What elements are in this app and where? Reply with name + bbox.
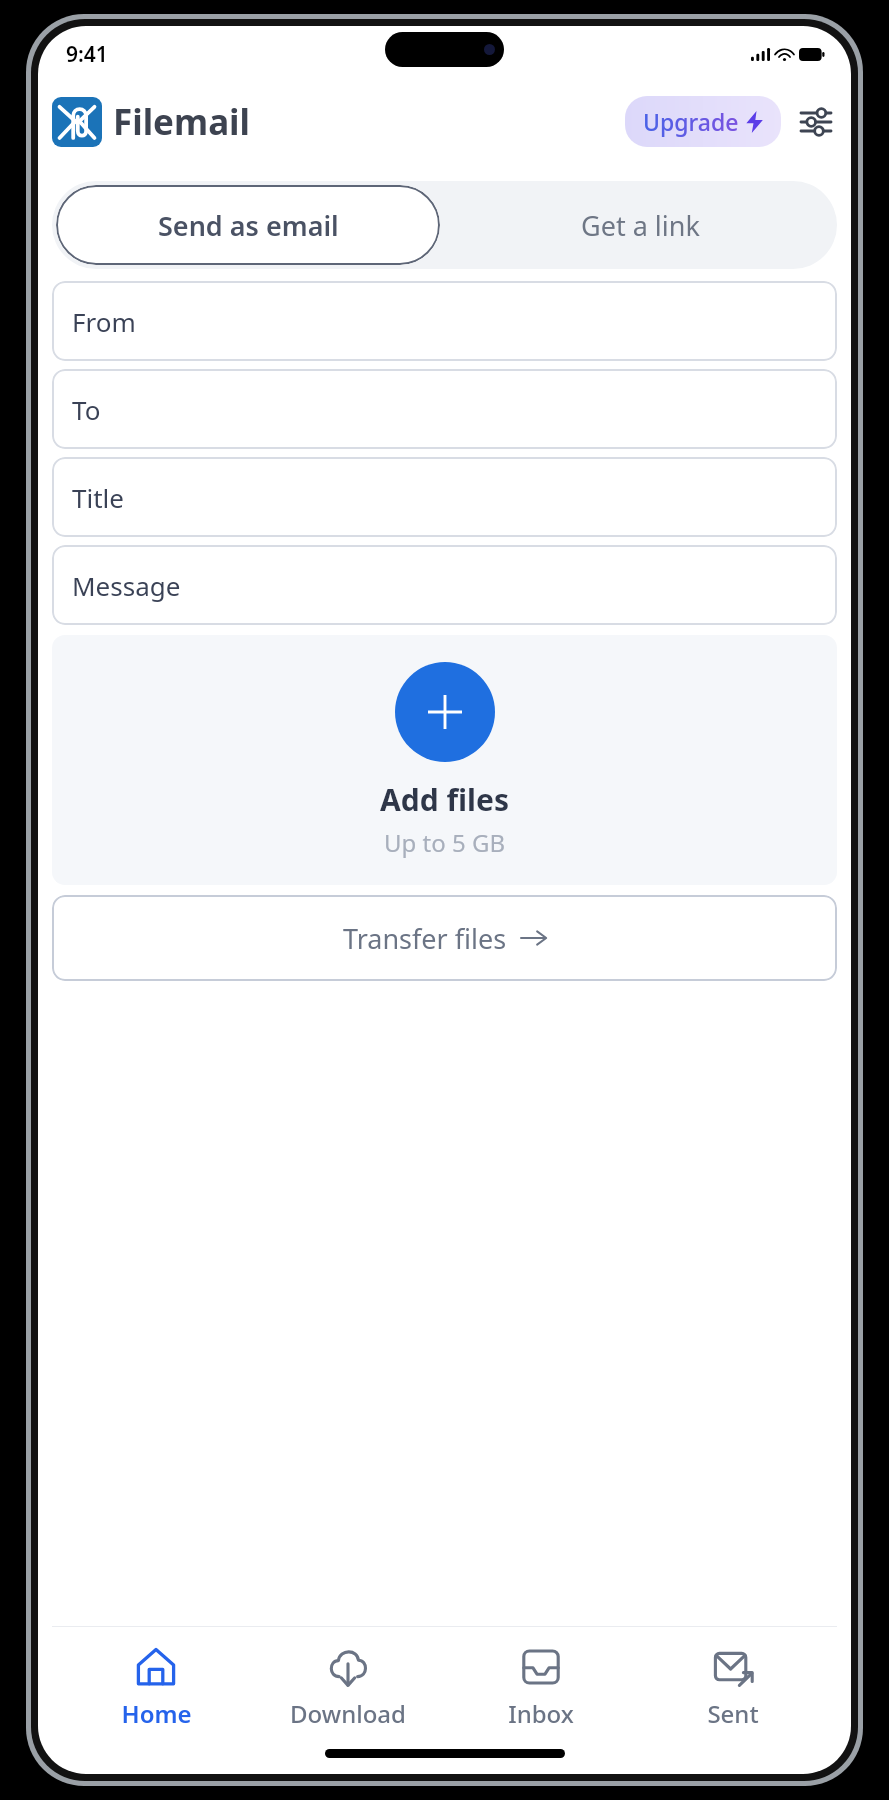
button[interactable]: Get a link xyxy=(444,181,837,269)
button[interactable]: Settings xyxy=(795,101,837,143)
staticText: Sent xyxy=(707,1697,759,1730)
button[interactable]: Inbox xyxy=(466,1643,616,1734)
staticText: Get a link xyxy=(581,207,700,244)
button[interactable]: Send as email xyxy=(56,185,440,265)
staticText: Title xyxy=(72,480,124,515)
staticText: Upgrade xyxy=(643,106,739,137)
staticText: 9:41 xyxy=(66,40,108,69)
button[interactable]: Add files xyxy=(52,635,837,885)
staticText: To xyxy=(72,392,101,427)
staticText: Download xyxy=(290,1697,406,1730)
button[interactable]: Sent xyxy=(658,1643,808,1734)
staticText: Up to 5 GB xyxy=(384,826,506,859)
staticText: From xyxy=(72,304,136,339)
staticText: Add files xyxy=(380,779,509,820)
button[interactable]: From xyxy=(52,281,837,361)
button[interactable]: Transfer files xyxy=(52,895,837,981)
button[interactable]: Message xyxy=(52,545,837,625)
button[interactable]: To xyxy=(52,369,837,449)
button[interactable]: Title xyxy=(52,457,837,537)
staticText: Transfer files xyxy=(343,920,507,957)
button[interactable]: Download xyxy=(273,1643,423,1734)
staticText: Message xyxy=(72,568,181,603)
staticText: Inbox xyxy=(508,1697,574,1730)
button[interactable]: Home xyxy=(81,1643,231,1734)
staticText: Filemail xyxy=(113,98,250,146)
staticText: Send as email xyxy=(158,207,339,244)
button[interactable]: Upgrade xyxy=(625,96,781,147)
staticText: Home xyxy=(121,1697,192,1730)
